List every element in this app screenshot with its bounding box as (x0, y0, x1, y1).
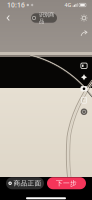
button[interactable]: Flash (78, 11, 90, 24)
button[interactable]: Flash mode (78, 94, 90, 106)
staticText: 4G (64, 1, 71, 9)
button[interactable]: Share (78, 27, 90, 40)
staticText: 下一步 (56, 179, 77, 187)
staticText: 识别商品 (39, 11, 54, 24)
button[interactable]: Album (78, 60, 90, 71)
button[interactable]: 下一步 (47, 177, 86, 189)
button[interactable]: Back (2, 11, 14, 24)
button[interactable]: Enhance (78, 71, 90, 83)
staticText: 商品正面 (14, 179, 42, 187)
staticText: 10:16 (7, 1, 25, 9)
button[interactable]: Camera (78, 83, 90, 94)
button[interactable]: 商品正面 (6, 177, 44, 189)
button[interactable]: 识别商品 (31, 13, 57, 23)
button[interactable]: More (78, 106, 90, 117)
